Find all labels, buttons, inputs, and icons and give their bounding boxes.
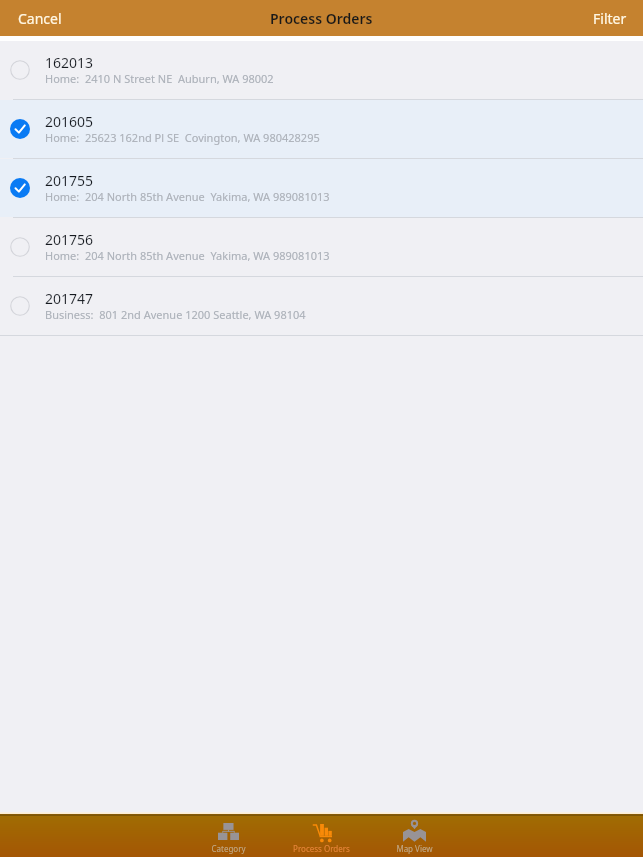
- staticText: Filter: [593, 9, 627, 28]
- staticText: Home: 2410 N Street NE Auburn, WA 98002: [45, 71, 274, 86]
- button[interactable]: Cancel: [0, 0, 76, 36]
- other: Not selected: [10, 60, 30, 80]
- staticText: 162013: [45, 53, 94, 72]
- button[interactable]: Selected: [0, 100, 643, 158]
- staticText: Business: 801 2nd Avenue 1200 Seattle, W…: [45, 307, 306, 322]
- staticText: 201605: [45, 112, 94, 131]
- other: Selected: [10, 178, 30, 198]
- staticText: Cancel: [18, 9, 62, 28]
- staticText: Home: 25623 162nd Pl SE Covington, WA 98…: [45, 130, 320, 145]
- staticText: Process Orders: [270, 9, 373, 28]
- other: Not selected: [10, 237, 30, 257]
- staticText: Home: 204 North 85th Avenue Yakima, WA 9…: [45, 189, 330, 204]
- staticText: 201755: [45, 171, 94, 190]
- staticText: Home: 204 North 85th Avenue Yakima, WA 9…: [45, 248, 330, 263]
- staticText: 201756: [45, 230, 94, 249]
- staticText: Category: [211, 843, 246, 854]
- other: Not selected: [10, 296, 30, 316]
- staticText: Map View: [396, 843, 433, 854]
- button[interactable]: Not selected: [0, 41, 643, 99]
- button[interactable]: Process Orders: [275, 816, 368, 857]
- staticText: 201747: [45, 289, 94, 308]
- button[interactable]: Not selected: [0, 218, 643, 276]
- button[interactable]: Selected: [0, 159, 643, 217]
- button[interactable]: Map View: [368, 816, 461, 857]
- button[interactable]: Category: [182, 816, 275, 857]
- staticText: Process Orders: [293, 843, 350, 854]
- button[interactable]: Not selected: [0, 277, 643, 335]
- button[interactable]: Filter: [579, 0, 643, 36]
- other: Selected: [10, 119, 30, 139]
